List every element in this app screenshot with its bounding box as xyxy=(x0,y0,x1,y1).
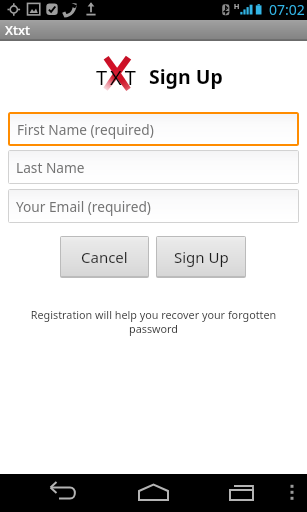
button[interactable]: Back xyxy=(42,474,307,512)
button[interactable]: First Name (required) xyxy=(10,114,297,144)
staticText: TXT xyxy=(96,64,139,91)
staticText: Registration will help you recover your … xyxy=(16,307,291,337)
button[interactable]: Sign Up xyxy=(157,237,245,276)
staticText: Your Email (required) xyxy=(16,197,151,216)
staticText: Xtxt xyxy=(5,21,30,39)
staticText: First Name (required) xyxy=(17,120,154,139)
button[interactable]: Your Email (required) xyxy=(9,190,298,222)
button[interactable]: Home xyxy=(132,474,307,512)
staticText: 07:02 xyxy=(269,0,305,19)
staticText: Sign Up xyxy=(174,247,229,267)
staticText: Cancel xyxy=(81,247,128,267)
button[interactable]: Last Name xyxy=(9,151,298,183)
staticText: H xyxy=(234,2,240,12)
button[interactable]: Cancel xyxy=(61,237,148,276)
staticText: Last Name xyxy=(16,158,85,177)
button[interactable]: Recent apps xyxy=(220,474,307,512)
staticText: Sign Up xyxy=(149,63,223,90)
